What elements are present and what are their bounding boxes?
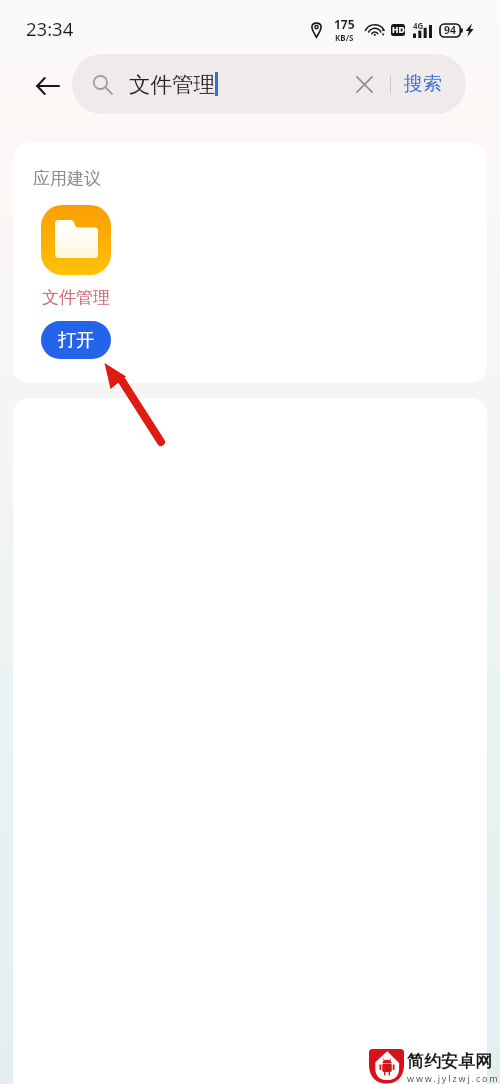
staticText: 175 bbox=[334, 16, 355, 32]
staticText: KB/S bbox=[335, 32, 354, 43]
button[interactable]: Back bbox=[24, 63, 70, 109]
staticText: 94 bbox=[444, 23, 457, 37]
staticText: 简约安卓网 bbox=[407, 1051, 492, 1072]
staticText: 应用建议 bbox=[33, 168, 101, 189]
button[interactable]: 文件管理 app icon bbox=[41, 205, 111, 275]
staticText: 4G bbox=[413, 20, 424, 31]
button[interactable]: Clear text bbox=[350, 70, 378, 98]
button[interactable]: 文件管理 bbox=[72, 54, 466, 114]
staticText: 打开 bbox=[58, 329, 94, 352]
button[interactable]: 搜索 bbox=[404, 72, 442, 96]
button[interactable]: 打开 bbox=[41, 321, 111, 359]
staticText: 23:34 bbox=[26, 16, 74, 41]
staticText: 搜索 bbox=[404, 72, 442, 96]
staticText: 文件管理 bbox=[129, 71, 215, 98]
staticText: www.jylzwj.com bbox=[407, 1072, 500, 1084]
staticText: 文件管理 bbox=[42, 287, 110, 308]
staticText: HD bbox=[392, 24, 405, 36]
